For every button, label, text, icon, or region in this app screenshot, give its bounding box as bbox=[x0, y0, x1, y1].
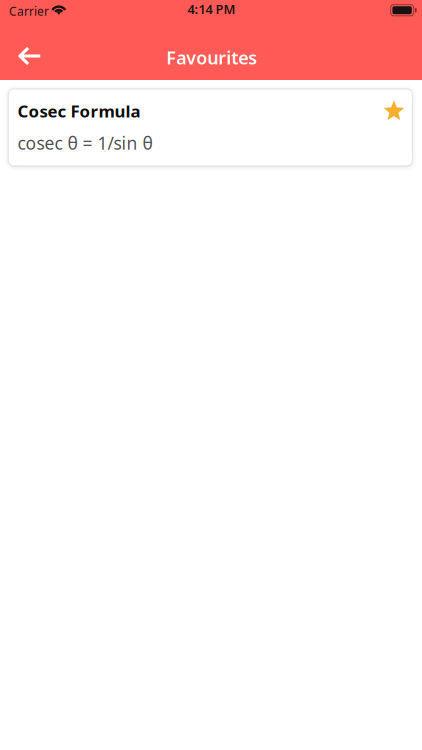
button[interactable]: Back bbox=[0, 0, 44, 44]
staticText: Favourites bbox=[166, 45, 257, 70]
staticText: 4:14 PM bbox=[187, 0, 235, 18]
staticText: Cosec Formula bbox=[18, 99, 141, 122]
button[interactable]: Cosec Formula bbox=[8, 89, 412, 166]
staticText: cosec θ = 1/sin θ bbox=[18, 131, 153, 155]
button[interactable]: Remove from favourites bbox=[380, 96, 408, 124]
staticText: Carrier bbox=[9, 3, 49, 19]
